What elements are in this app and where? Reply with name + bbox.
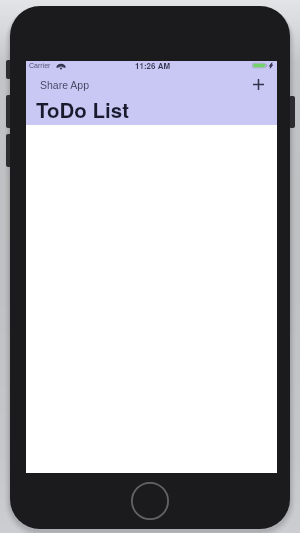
staticText: 11:26 AM bbox=[135, 60, 171, 71]
staticText: Share App bbox=[40, 79, 90, 91]
staticText: Carrier bbox=[29, 62, 51, 70]
button[interactable]: Share App bbox=[37, 76, 93, 94]
button[interactable]: Add item bbox=[249, 75, 267, 93]
staticText: ToDo List bbox=[36, 95, 129, 123]
